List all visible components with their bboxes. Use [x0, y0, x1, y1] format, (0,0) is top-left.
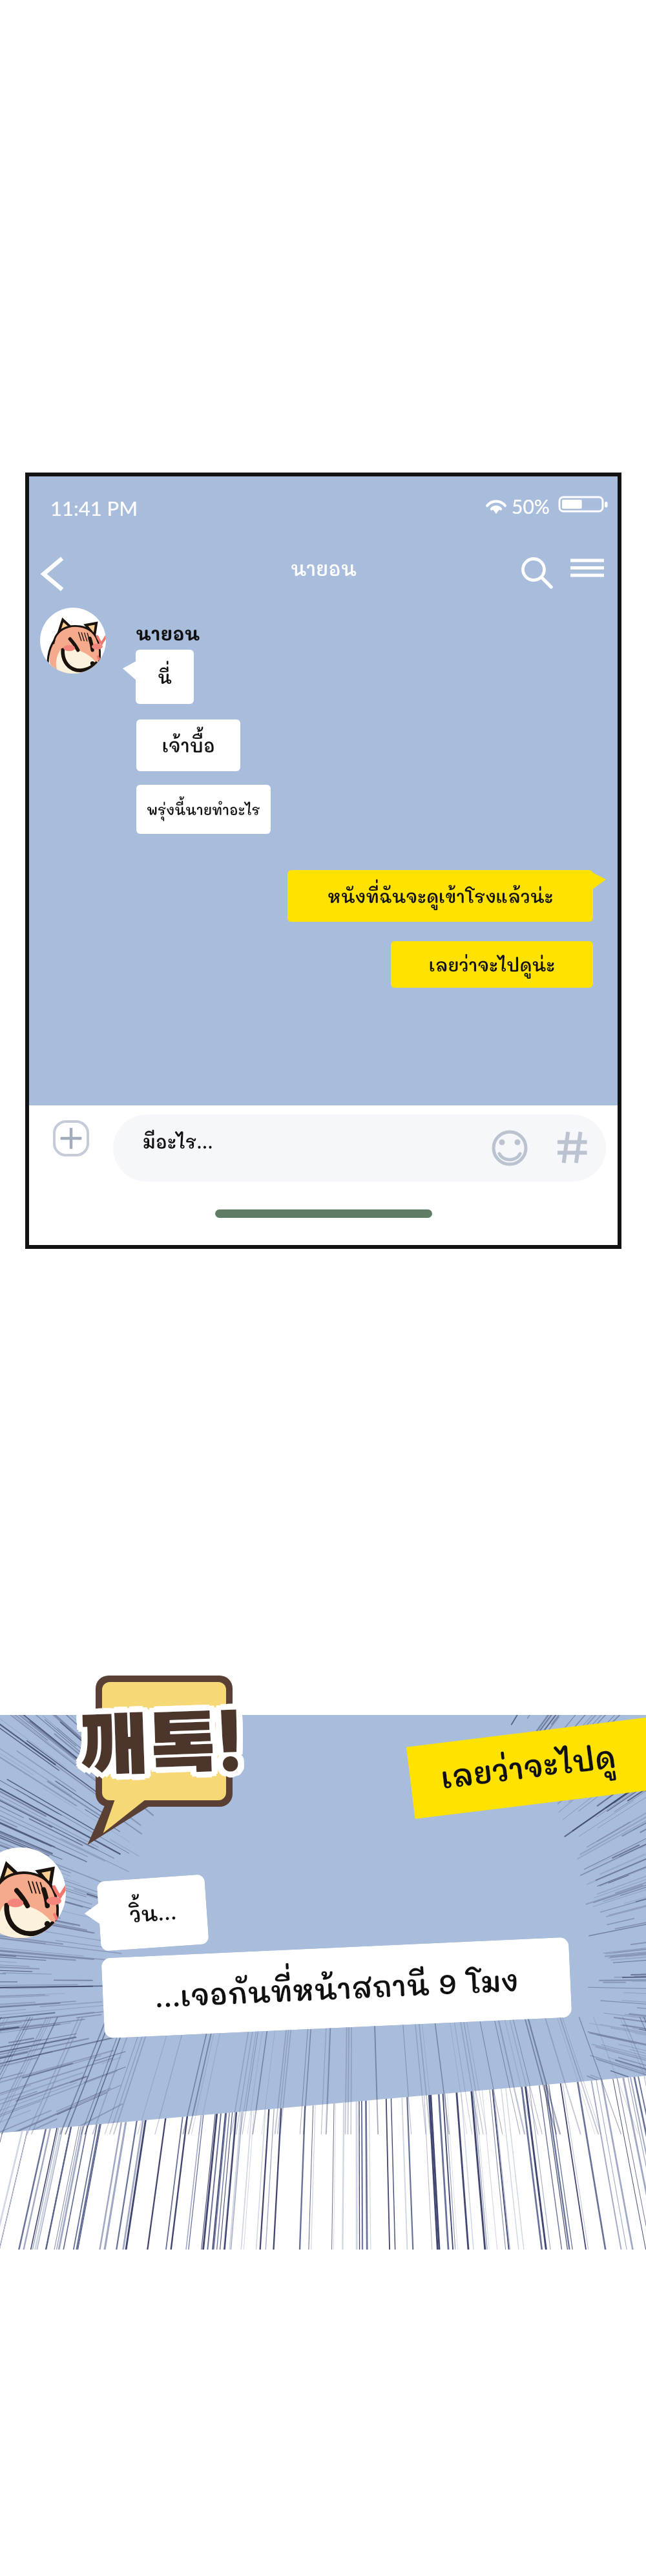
staticText: มีอะไร...: [143, 1130, 213, 1153]
staticText: 깨톡!: [77, 1700, 244, 1787]
button[interactable]: พรุ่งนี้นายทำอะไร: [136, 785, 271, 834]
staticText: หนังที่ฉันจะดูเข้าโรงแล้วน่ะ: [328, 885, 554, 908]
staticText: 깨톡!: [83, 1708, 250, 1795]
button[interactable]: เลยว่าจะไปดูน่ะ: [391, 941, 593, 988]
staticText: 깨톡!: [77, 1706, 244, 1793]
staticText: วิ้น...: [128, 1898, 178, 1928]
staticText: นายอน: [136, 621, 200, 646]
other: Hashtag: [557, 1132, 589, 1163]
staticText: 50%: [512, 495, 550, 518]
button[interactable]: เลยว่าจะไปดู: [406, 1715, 646, 1819]
other: Emoji: [492, 1130, 528, 1166]
staticText: นี่: [158, 666, 172, 688]
staticText: 깨톡!: [72, 1703, 238, 1790]
button[interactable]: หนังที่ฉันจะดูเข้าโรงแล้วน่ะ: [287, 870, 593, 922]
button[interactable]: Add attachment: [53, 1120, 89, 1156]
staticText: พรุ่งนี้นายทำอะไร: [147, 801, 260, 818]
button[interactable]: Search: [521, 557, 553, 590]
staticText: ...เจอกันที่หน้าสถานี 9 โมง: [154, 1961, 519, 2015]
button[interactable]: เจ้าบื้อ: [136, 719, 240, 771]
staticText: 깨톡!: [83, 1705, 250, 1793]
button[interactable]: มีอะไร...: [113, 1114, 606, 1182]
staticText: 깨톡!: [78, 1711, 244, 1799]
staticText: เลยว่าจะไปดู: [439, 1737, 618, 1797]
staticText: 11:41 PM: [50, 496, 138, 520]
button[interactable]: Menu: [570, 559, 604, 580]
button[interactable]: นี่: [136, 650, 194, 704]
staticText: 깨톡!: [73, 1710, 240, 1797]
button[interactable]: วิ้น...: [97, 1874, 209, 1951]
button[interactable]: ...เจอกันที่หน้าสถานี 9 โมง: [101, 1937, 572, 2038]
staticText: เลยว่าจะไปดูน่ะ: [429, 953, 556, 976]
staticText: 깨톡!: [82, 1710, 249, 1797]
staticText: 깨톡!: [72, 1706, 238, 1793]
staticText: 깨톡!: [82, 1701, 249, 1788]
staticText: นายอน: [291, 556, 357, 581]
staticText: เจ้าบื้อ: [162, 734, 215, 757]
staticText: 깨톡!: [72, 1708, 239, 1796]
button[interactable]: Back: [30, 547, 72, 588]
staticText: 깨톡!: [73, 1701, 240, 1788]
staticText: 깨톡!: [83, 1703, 250, 1790]
